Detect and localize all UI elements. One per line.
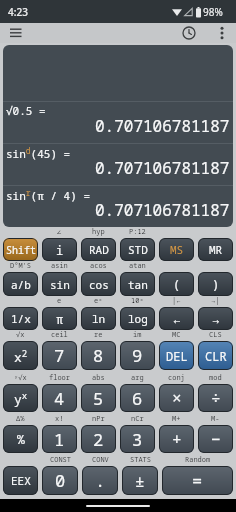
button[interactable] <box>182 26 196 40</box>
staticText: yx <box>14 389 28 407</box>
button[interactable]: 5 <box>81 384 116 412</box>
staticText: x! <box>55 414 64 424</box>
button[interactable] <box>220 26 224 40</box>
staticText: sin <box>50 277 70 292</box>
staticText: Shift <box>6 243 36 257</box>
staticText: abs <box>92 373 105 383</box>
button[interactable]: cos <box>81 272 116 296</box>
staticText: ln <box>92 311 106 326</box>
button[interactable]: DEL <box>159 341 194 370</box>
staticText: asin <box>51 261 68 271</box>
staticText: → <box>212 310 220 328</box>
staticText: ) <box>212 276 220 292</box>
staticText: Δ% <box>16 414 25 424</box>
staticText: MC <box>172 330 181 340</box>
staticText: hyp <box>92 227 105 237</box>
button[interactable]: × <box>159 384 194 412</box>
button[interactable]: sin <box>42 272 77 296</box>
staticText: acos <box>90 261 107 271</box>
staticText: 3 <box>132 428 143 451</box>
button[interactable]: a/b <box>3 272 38 296</box>
staticText: 1 <box>54 428 65 451</box>
staticText: sind(45) = <box>6 145 71 161</box>
staticText: 6 <box>132 387 143 410</box>
staticText: STATS <box>130 455 151 465</box>
button[interactable]: 6 <box>120 384 155 412</box>
staticText: ( <box>173 276 181 292</box>
staticText: e <box>57 296 62 306</box>
button[interactable]: % <box>3 425 38 453</box>
button[interactable]: ( <box>159 272 194 296</box>
staticText: a/b <box>11 277 31 292</box>
button[interactable]: 0 <box>42 466 78 495</box>
staticText: = <box>192 469 203 492</box>
button[interactable]: 2 <box>81 425 116 453</box>
button[interactable]: yx <box>3 384 38 412</box>
staticText: ceil <box>51 330 68 340</box>
staticText: − <box>211 428 221 450</box>
button[interactable]: log <box>120 307 155 330</box>
button[interactable]: → <box>198 307 233 330</box>
staticText: 98% <box>203 5 223 19</box>
button[interactable]: 1/x <box>3 307 38 330</box>
staticText: tan <box>128 277 148 292</box>
staticText: 0.707106781187 <box>95 199 230 221</box>
staticText: nCr <box>131 414 144 424</box>
button[interactable]: ÷ <box>198 384 233 412</box>
button[interactable]: STD <box>120 238 155 261</box>
button[interactable]: MS <box>159 238 194 261</box>
button[interactable]: x2 <box>3 341 38 370</box>
staticText: nPr <box>92 414 105 424</box>
button[interactable]: ln <box>81 307 116 330</box>
staticText: DEL <box>166 348 188 364</box>
button[interactable]: 1 <box>42 425 77 453</box>
button[interactable]: MR <box>198 238 233 261</box>
button[interactable]: = <box>162 466 233 495</box>
staticText: i <box>56 242 64 258</box>
button[interactable]: 3 <box>120 425 155 453</box>
staticText: ← <box>173 310 181 328</box>
button[interactable] <box>10 28 22 38</box>
staticText: floor <box>49 373 70 383</box>
staticText: % <box>17 430 25 448</box>
button[interactable]: EEX <box>3 466 38 495</box>
staticText: CONST <box>50 455 71 465</box>
staticText: P:12 <box>129 227 146 237</box>
button[interactable]: 9 <box>120 341 155 370</box>
staticText: π <box>56 311 64 327</box>
staticText: 0.707106781187 <box>95 115 230 137</box>
button[interactable]: tan <box>120 272 155 296</box>
button[interactable]: . <box>82 466 118 495</box>
staticText: CONV <box>92 455 109 465</box>
staticText: 1/x <box>11 311 31 326</box>
staticText: 5 <box>93 387 104 410</box>
button[interactable]: CLR <box>198 341 233 370</box>
staticText: MS <box>170 242 184 257</box>
staticText: STD <box>128 242 148 257</box>
button[interactable]: + <box>159 425 194 453</box>
staticText: 4:23 <box>8 5 28 19</box>
staticText: atan <box>129 261 146 271</box>
staticText: D°M'S <box>10 261 31 271</box>
staticText: Random <box>185 455 211 465</box>
staticText: log <box>128 311 148 326</box>
staticText: . <box>95 469 106 492</box>
button[interactable]: i <box>42 238 77 261</box>
staticText: ÷ <box>211 387 221 409</box>
button[interactable]: 8 <box>81 341 116 370</box>
button[interactable]: π <box>42 307 77 330</box>
button[interactable]: Shift <box>3 238 38 261</box>
button[interactable]: ± <box>122 466 158 495</box>
button[interactable]: 4 <box>42 384 77 412</box>
staticText: 4 <box>54 387 65 410</box>
button[interactable]: ) <box>198 272 233 296</box>
button[interactable]: 7 <box>42 341 77 370</box>
button[interactable]: ← <box>159 307 194 330</box>
staticText: 2 <box>93 428 104 451</box>
staticText: CLS <box>209 330 222 340</box>
staticText: eˣ <box>94 296 103 306</box>
staticText: sinr(π / 4) = <box>6 187 90 203</box>
button[interactable]: − <box>198 425 233 453</box>
staticText: 9 <box>132 344 143 367</box>
button[interactable]: RAD <box>81 238 116 261</box>
